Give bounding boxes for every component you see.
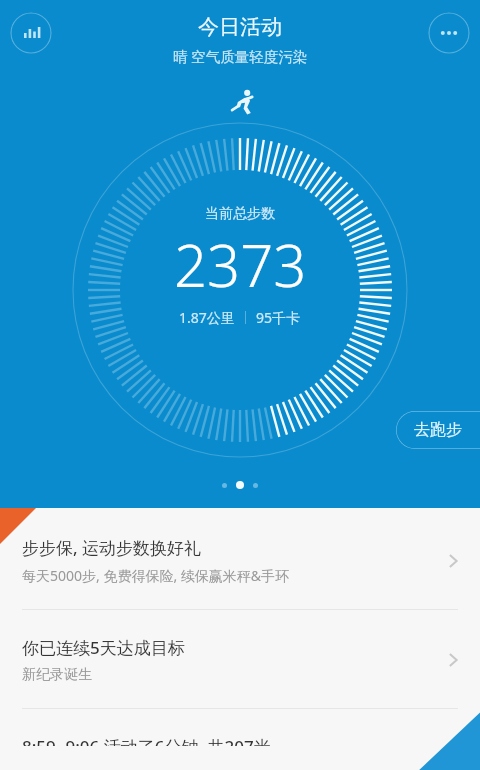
button[interactable]: 8:59~9:06 活动了6分钟, 共207米 <box>0 709 480 770</box>
button[interactable]: Statistics <box>10 12 52 54</box>
staticText: 95千卡 <box>256 308 301 327</box>
staticText: 晴 空气质量轻度污染 <box>173 46 308 66</box>
staticText: 8:59~9:06 活动了6分钟, 共207米 <box>22 735 271 746</box>
button[interactable]: More options <box>428 12 470 54</box>
staticText: 步步保, 运动步数换好礼 <box>22 536 202 559</box>
staticText: 新纪录诞生 <box>22 666 92 684</box>
staticText: 你已连续5天达成目标 <box>22 636 185 659</box>
staticText: 2373 <box>174 225 307 304</box>
button[interactable]: 去跑步 <box>396 411 480 449</box>
staticText: 每天5000步, 免费得保险, 续保赢米秤&手环 <box>22 566 290 585</box>
staticText: 今日活动 <box>198 14 282 40</box>
staticText: 当前总步数 <box>205 205 275 223</box>
staticText: 去跑步 <box>414 420 462 440</box>
staticText: 1.87公里 <box>179 308 235 327</box>
button[interactable]: 你已连续5天达成目标 <box>0 610 480 708</box>
button[interactable]: 步步保, 运动步数换好礼 <box>0 508 480 609</box>
